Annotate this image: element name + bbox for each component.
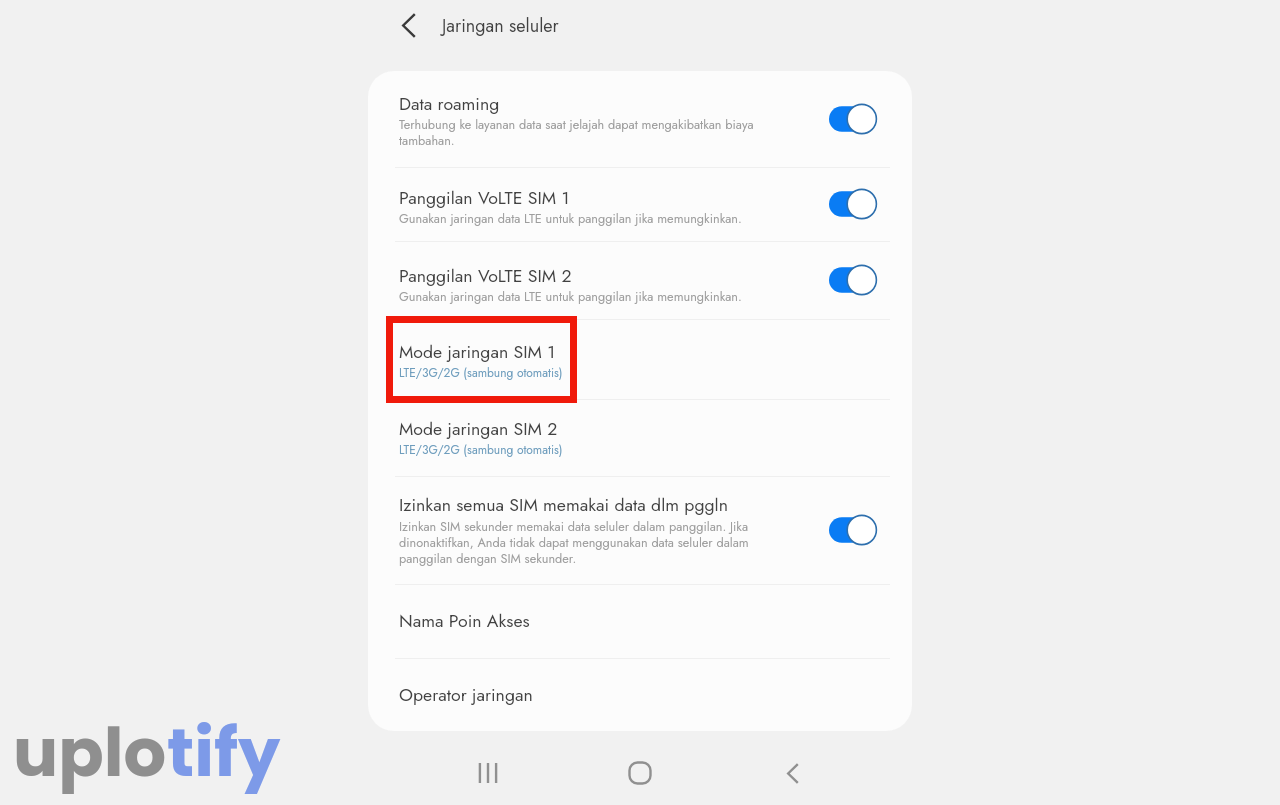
staticText: Izinkan SIM sekunder memakai data selule…: [399, 517, 799, 568]
button[interactable]: Navigate up: [387, 3, 431, 47]
staticText: Panggilan VoLTE SIM 1: [399, 185, 799, 211]
staticText: Data roaming: [399, 91, 799, 117]
staticText: tify: [167, 706, 281, 800]
button[interactable]: Mode jaringan SIM 1: [368, 319, 912, 399]
staticText: LTE/3G/2G (sambung otomatis): [399, 441, 879, 458]
staticText: Izinkan semua SIM memakai data dlm pggln: [399, 492, 799, 518]
staticText: Operator jaringan: [399, 682, 879, 708]
button[interactable]: Toggle setting: [823, 186, 881, 222]
staticText: LTE/3G/2G (sambung otomatis): [399, 364, 879, 381]
button[interactable]: Operator jaringan: [368, 658, 912, 731]
button[interactable]: Nama Poin Akses: [368, 584, 912, 658]
button[interactable]: Mode jaringan SIM 2: [368, 399, 912, 476]
staticText: Terhubung ke layanan data saat jelajah d…: [399, 115, 799, 150]
staticText: Panggilan VoLTE SIM 2: [399, 263, 799, 289]
button[interactable]: Data roaming: [368, 71, 912, 167]
button[interactable]: Panggilan VoLTE SIM 2: [368, 241, 912, 319]
staticText: Nama Poin Akses: [399, 608, 879, 634]
button[interactable]: Back: [763, 743, 823, 803]
button[interactable]: Toggle setting: [823, 262, 881, 298]
staticText: Jaringan seluler: [442, 13, 559, 39]
staticText: Mode jaringan SIM 1: [399, 339, 879, 365]
staticText: Gunakan jaringan data LTE untuk panggila…: [399, 209, 799, 227]
button[interactable]: Recent apps: [458, 743, 518, 803]
staticText: Gunakan jaringan data LTE untuk panggila…: [399, 287, 799, 305]
staticText: Mode jaringan SIM 2: [399, 416, 879, 442]
button[interactable]: Home: [610, 743, 670, 803]
button[interactable]: Toggle setting: [823, 101, 881, 137]
button[interactable]: Izinkan semua SIM memakai data dlm pggln: [368, 476, 912, 584]
staticText: uplo: [13, 706, 167, 800]
button[interactable]: Toggle setting: [823, 512, 881, 548]
button[interactable]: Panggilan VoLTE SIM 1: [368, 167, 912, 241]
